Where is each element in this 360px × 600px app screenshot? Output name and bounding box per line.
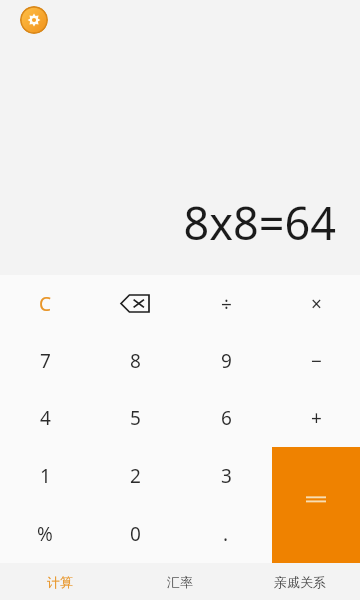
button[interactable]: Settings: [20, 6, 48, 34]
button[interactable]: 0: [90, 505, 180, 563]
button[interactable]: %: [0, 505, 90, 563]
staticText: −: [311, 348, 322, 374]
button[interactable]: 3: [180, 447, 272, 505]
staticText: .: [223, 521, 229, 547]
button[interactable]: [272, 447, 360, 505]
staticText: ÷: [221, 291, 232, 317]
staticText: 7: [40, 348, 51, 374]
staticText: +: [311, 405, 322, 431]
button[interactable]: 计算: [0, 563, 120, 600]
staticText: 计算: [47, 574, 73, 590]
button[interactable]: +: [272, 389, 360, 447]
button[interactable]: 8: [90, 332, 180, 389]
staticText: 9: [221, 348, 232, 374]
staticText: 4: [40, 405, 51, 431]
staticText: 0: [130, 521, 141, 547]
staticText: 汇率: [167, 574, 193, 590]
button[interactable]: 亲戚关系: [240, 563, 360, 600]
staticText: 5: [130, 405, 141, 431]
button[interactable]: ×: [272, 275, 360, 332]
button[interactable]: 2: [90, 447, 180, 505]
staticText: 8x8=64: [183, 192, 336, 253]
button[interactable]: 5: [90, 389, 180, 447]
button[interactable]: 7: [0, 332, 90, 389]
staticText: 6: [221, 405, 232, 431]
staticText: 2: [130, 463, 141, 489]
button[interactable]: C: [0, 275, 90, 332]
button[interactable]: .: [180, 505, 272, 563]
staticText: ×: [311, 291, 322, 317]
staticText: 1: [40, 463, 51, 489]
button[interactable]: Backspace: [90, 275, 180, 332]
staticText: C: [39, 291, 52, 317]
button[interactable]: −: [272, 332, 360, 389]
staticText: 3: [221, 463, 232, 489]
button[interactable]: 汇率: [120, 563, 240, 600]
button[interactable]: 9: [180, 332, 272, 389]
staticText: %: [37, 521, 53, 547]
staticText: 8: [130, 348, 141, 374]
button[interactable]: ÷: [180, 275, 272, 332]
button[interactable]: 6: [180, 389, 272, 447]
button[interactable]: 1: [0, 447, 90, 505]
staticText: 亲戚关系: [274, 574, 326, 590]
button[interactable]: 4: [0, 389, 90, 447]
